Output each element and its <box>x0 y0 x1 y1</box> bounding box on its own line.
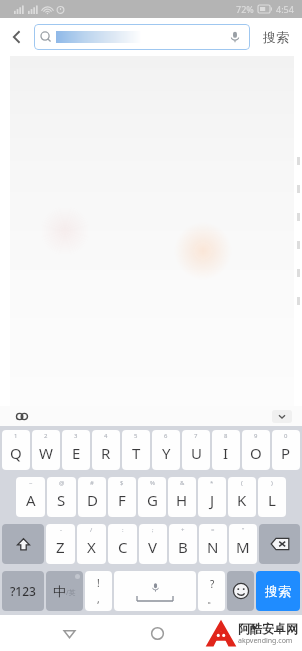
staticText: 4:54 <box>276 3 294 15</box>
button[interactable]: ~ <box>16 477 45 517</box>
staticText: 7 <box>194 432 198 440</box>
staticText: 阿酷安卓网 <box>238 621 298 636</box>
staticText: 72% <box>236 3 254 15</box>
staticText: 搜索 <box>263 29 289 45</box>
staticText: 2 <box>44 432 48 440</box>
button[interactable]: " <box>229 524 257 564</box>
staticText: Y <box>162 443 171 463</box>
button[interactable]: ) <box>258 477 286 517</box>
staticText: P <box>281 443 291 463</box>
staticText: 5 <box>134 432 138 440</box>
staticText: 4 <box>104 432 108 440</box>
button[interactable]: ! <box>85 571 112 611</box>
staticText: M <box>236 537 250 557</box>
staticText: N <box>207 537 219 557</box>
staticText: , <box>97 592 100 606</box>
staticText: V <box>148 537 158 557</box>
staticText: U <box>191 443 202 463</box>
staticText: 中 <box>53 583 66 599</box>
staticText: & <box>180 479 185 487</box>
button[interactable]: % <box>138 477 166 517</box>
staticText: X <box>87 537 96 557</box>
button[interactable]: : <box>108 524 137 564</box>
staticText: ) <box>271 479 273 487</box>
staticText: 0 <box>284 432 288 440</box>
staticText: J <box>210 490 215 510</box>
button[interactable]: Hide keyboard <box>272 410 292 423</box>
button[interactable]: 搜索 <box>256 571 300 611</box>
button[interactable]: 8 <box>212 430 240 470</box>
button[interactable]: # <box>78 477 106 517</box>
button[interactable]: ; <box>139 524 167 564</box>
staticText: @ <box>59 479 65 487</box>
staticText: S <box>57 490 66 510</box>
button[interactable]: @ <box>47 477 76 517</box>
button[interactable]: Home <box>137 615 177 651</box>
staticText: B <box>178 537 188 557</box>
staticText: T <box>132 443 141 463</box>
button[interactable]: * <box>198 477 226 517</box>
button[interactable]: 6 <box>152 430 180 470</box>
staticText: ~ <box>29 479 33 487</box>
staticText: ? <box>210 577 215 591</box>
staticText: " <box>242 526 245 534</box>
button[interactable]: Shift <box>2 524 44 564</box>
staticText: 9 <box>254 432 258 440</box>
button[interactable]: Back <box>0 18 34 56</box>
staticText: E <box>72 443 81 463</box>
staticText: akpvending.com <box>238 636 293 646</box>
staticText: ! <box>97 576 100 590</box>
button[interactable]: 2 <box>32 430 60 470</box>
staticText: 6 <box>164 432 168 440</box>
button[interactable]: 中 <box>46 571 83 611</box>
button[interactable]: 3 <box>62 430 90 470</box>
button[interactable]: Emoji <box>227 571 254 611</box>
staticText: Z <box>56 537 65 557</box>
staticText: + <box>181 526 185 534</box>
staticText: 搜索 <box>265 583 291 599</box>
button[interactable]: + <box>169 524 197 564</box>
button[interactable]: ?123 <box>2 571 44 611</box>
staticText: F <box>118 490 126 510</box>
staticText: ; <box>152 526 154 534</box>
button[interactable]: Backspace <box>259 524 300 564</box>
button[interactable]: Clipboard <box>14 408 30 424</box>
staticText: K <box>237 490 247 510</box>
staticText: * <box>210 479 214 487</box>
staticText: D <box>87 490 98 510</box>
staticText: : <box>122 526 124 534</box>
button[interactable]: ? <box>198 571 225 611</box>
staticText: 。 <box>207 593 217 606</box>
button[interactable]: / <box>77 524 106 564</box>
button[interactable]: 搜索 <box>250 18 302 56</box>
button[interactable]: 5 <box>122 430 150 470</box>
staticText: O <box>250 443 262 463</box>
staticText: 8 <box>224 432 228 440</box>
staticText: I <box>223 443 229 463</box>
button[interactable]: 4 <box>92 430 120 470</box>
button[interactable]: ( <box>228 477 256 517</box>
staticText: /英 <box>66 588 76 598</box>
staticText: / <box>90 526 93 534</box>
button[interactable]: Back <box>49 615 89 651</box>
staticText: R <box>101 443 111 463</box>
button[interactable]: 1 <box>2 430 30 470</box>
button[interactable]: 9 <box>242 430 270 470</box>
staticText: $ <box>120 479 124 487</box>
staticText: # <box>90 479 94 487</box>
button[interactable]: Voice search <box>228 30 242 44</box>
staticText: W <box>39 443 53 463</box>
button[interactable]: Space <box>114 571 196 611</box>
button[interactable]: 0 <box>272 430 300 470</box>
staticText: H <box>176 490 188 510</box>
button[interactable]: & <box>168 477 196 517</box>
staticText: ( <box>241 479 243 487</box>
button[interactable]: $ <box>108 477 136 517</box>
staticText: - <box>60 526 62 534</box>
button[interactable]: - <box>46 524 75 564</box>
staticText: ?123 <box>10 583 36 599</box>
button[interactable]: = <box>199 524 227 564</box>
button[interactable]: Voice search <box>34 24 250 50</box>
button[interactable]: 7 <box>182 430 210 470</box>
staticText: L <box>268 490 276 510</box>
